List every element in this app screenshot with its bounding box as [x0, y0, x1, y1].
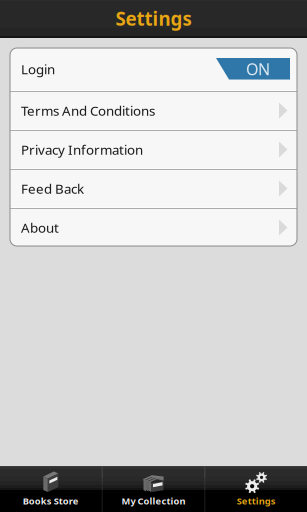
staticText: Settings — [115, 6, 191, 31]
staticText: Login — [21, 60, 55, 78]
staticText: Terms And Conditions — [21, 102, 155, 119]
button[interactable]: About — [10, 209, 297, 246]
button[interactable]: Settings — [205, 466, 307, 512]
staticText: My Collection — [121, 495, 185, 507]
button[interactable]: Feed Back — [10, 170, 297, 207]
button[interactable]: Books Store — [0, 466, 102, 512]
staticText: ON — [246, 58, 270, 80]
staticText: About — [21, 219, 59, 236]
button[interactable]: Terms And Conditions — [10, 92, 297, 129]
staticText: Feed Back — [21, 180, 84, 197]
button[interactable]: Privacy Information — [10, 131, 297, 168]
staticText: Books Store — [23, 495, 79, 507]
staticText: Privacy Information — [21, 141, 143, 158]
staticText: Settings — [237, 495, 276, 507]
button[interactable]: My Collection — [103, 466, 204, 512]
button[interactable]: Login — [10, 48, 297, 90]
